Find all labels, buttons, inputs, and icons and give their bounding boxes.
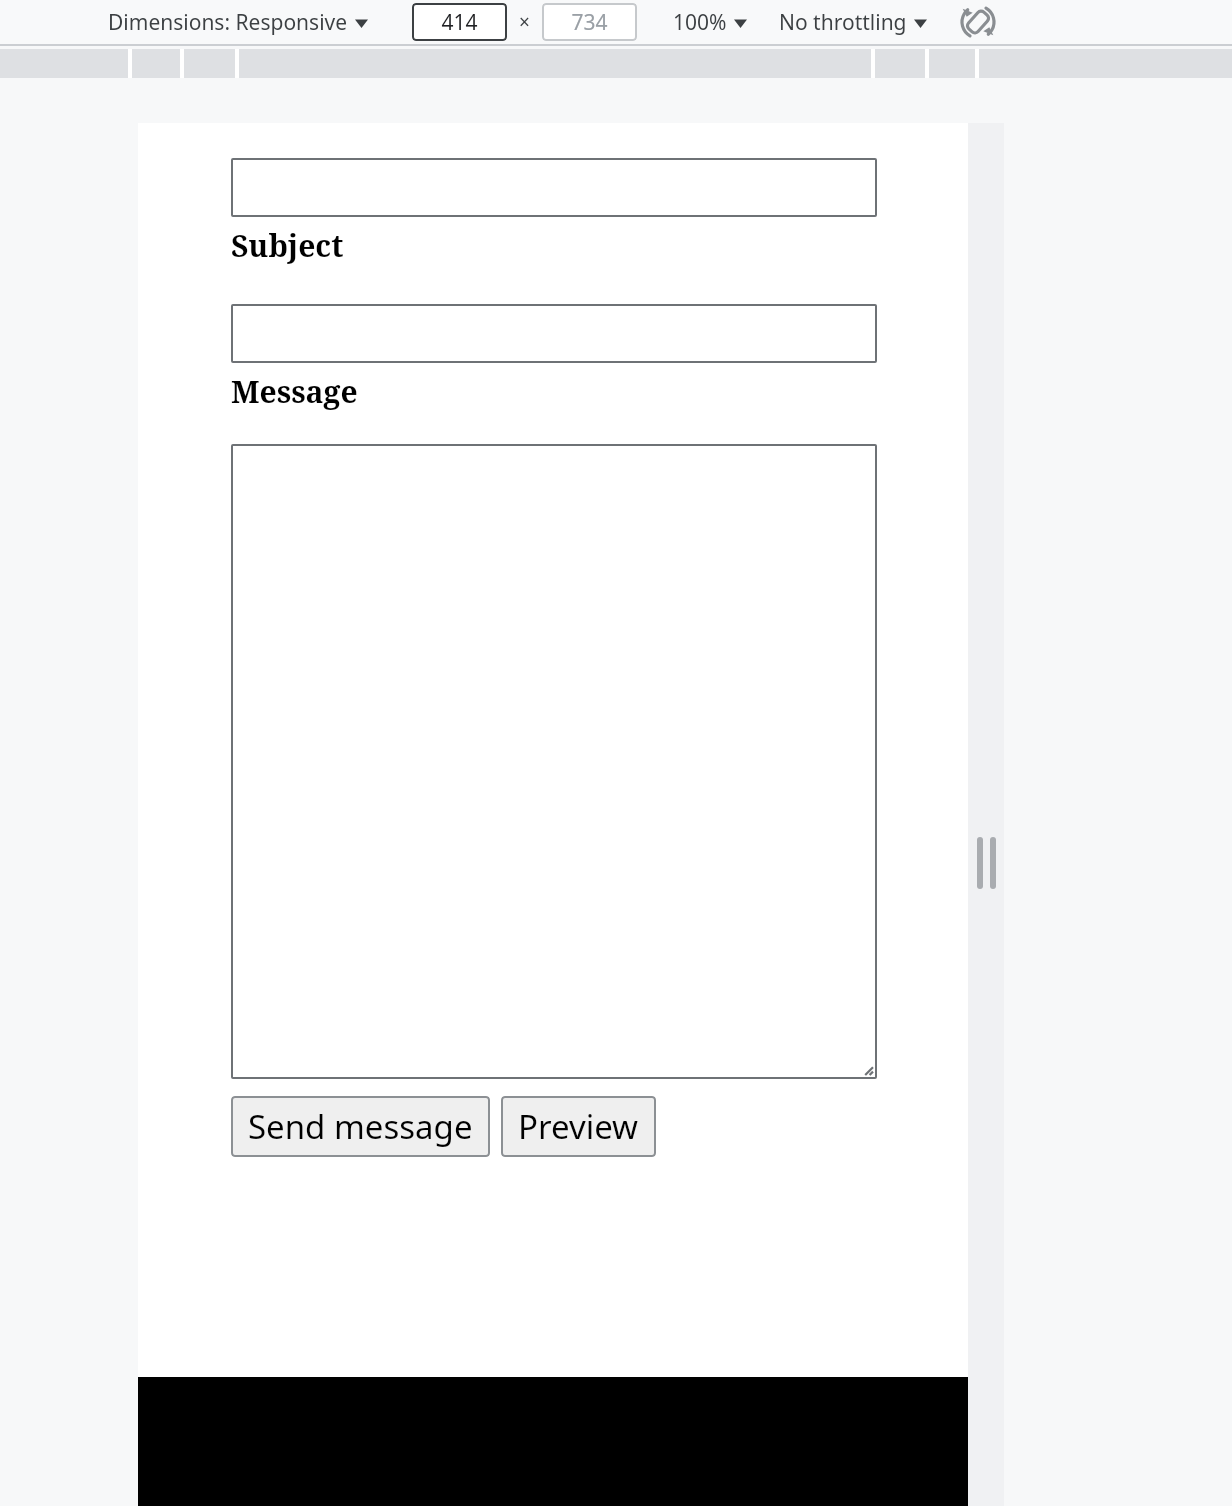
staticText: Message (231, 371, 358, 412)
button[interactable]: 734 (542, 3, 637, 41)
staticText: Subject (231, 225, 344, 266)
button[interactable]: 414 (412, 3, 507, 41)
staticText: 414 (441, 8, 478, 37)
button[interactable]: Resize viewport width (968, 123, 1004, 1506)
button[interactable]: Rotate viewport (955, 0, 1001, 44)
staticText: × (519, 9, 530, 35)
button[interactable]: No throttling (775, 2, 931, 43)
staticText: Preview (518, 1104, 639, 1149)
button[interactable]: 100% (669, 2, 751, 43)
staticText: No throttling (779, 8, 907, 37)
button[interactable] (231, 304, 877, 363)
button[interactable]: Preview (501, 1096, 656, 1157)
button[interactable] (231, 158, 877, 217)
button[interactable] (231, 444, 877, 1079)
staticText: Dimensions: Responsive (108, 8, 348, 37)
button[interactable]: Send message (231, 1096, 490, 1157)
button[interactable]: Dimensions: Responsive (104, 2, 372, 43)
staticText: 734 (571, 8, 608, 37)
staticText: Send message (248, 1104, 473, 1149)
staticText: 100% (673, 8, 727, 37)
